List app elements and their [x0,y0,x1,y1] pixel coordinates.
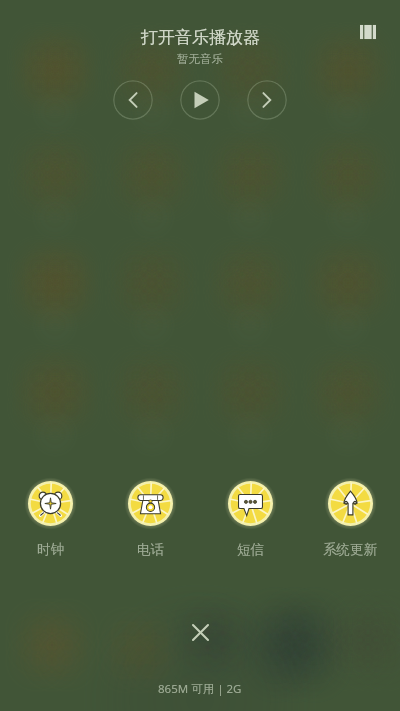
staticText: 暂无音乐 [177,52,223,66]
staticText: 时钟 [37,541,64,558]
staticText: 电话 [137,541,164,558]
button[interactable]: Equalizer [356,20,380,44]
button[interactable]: 短信 [200,481,300,558]
staticText: 短信 [237,541,264,558]
button[interactable]: 时钟 [0,481,100,558]
button[interactable]: Next track [247,80,287,120]
button[interactable]: Play [180,80,220,120]
staticText: 打开音乐播放器 [141,27,260,48]
button[interactable]: Previous track [113,80,153,120]
button[interactable]: 电话 [100,481,200,558]
staticText: 865M 可用 | 2G [158,681,242,697]
button[interactable]: Close [180,612,220,652]
staticText: 系统更新 [323,541,377,558]
button[interactable]: 系统更新 [300,481,400,558]
